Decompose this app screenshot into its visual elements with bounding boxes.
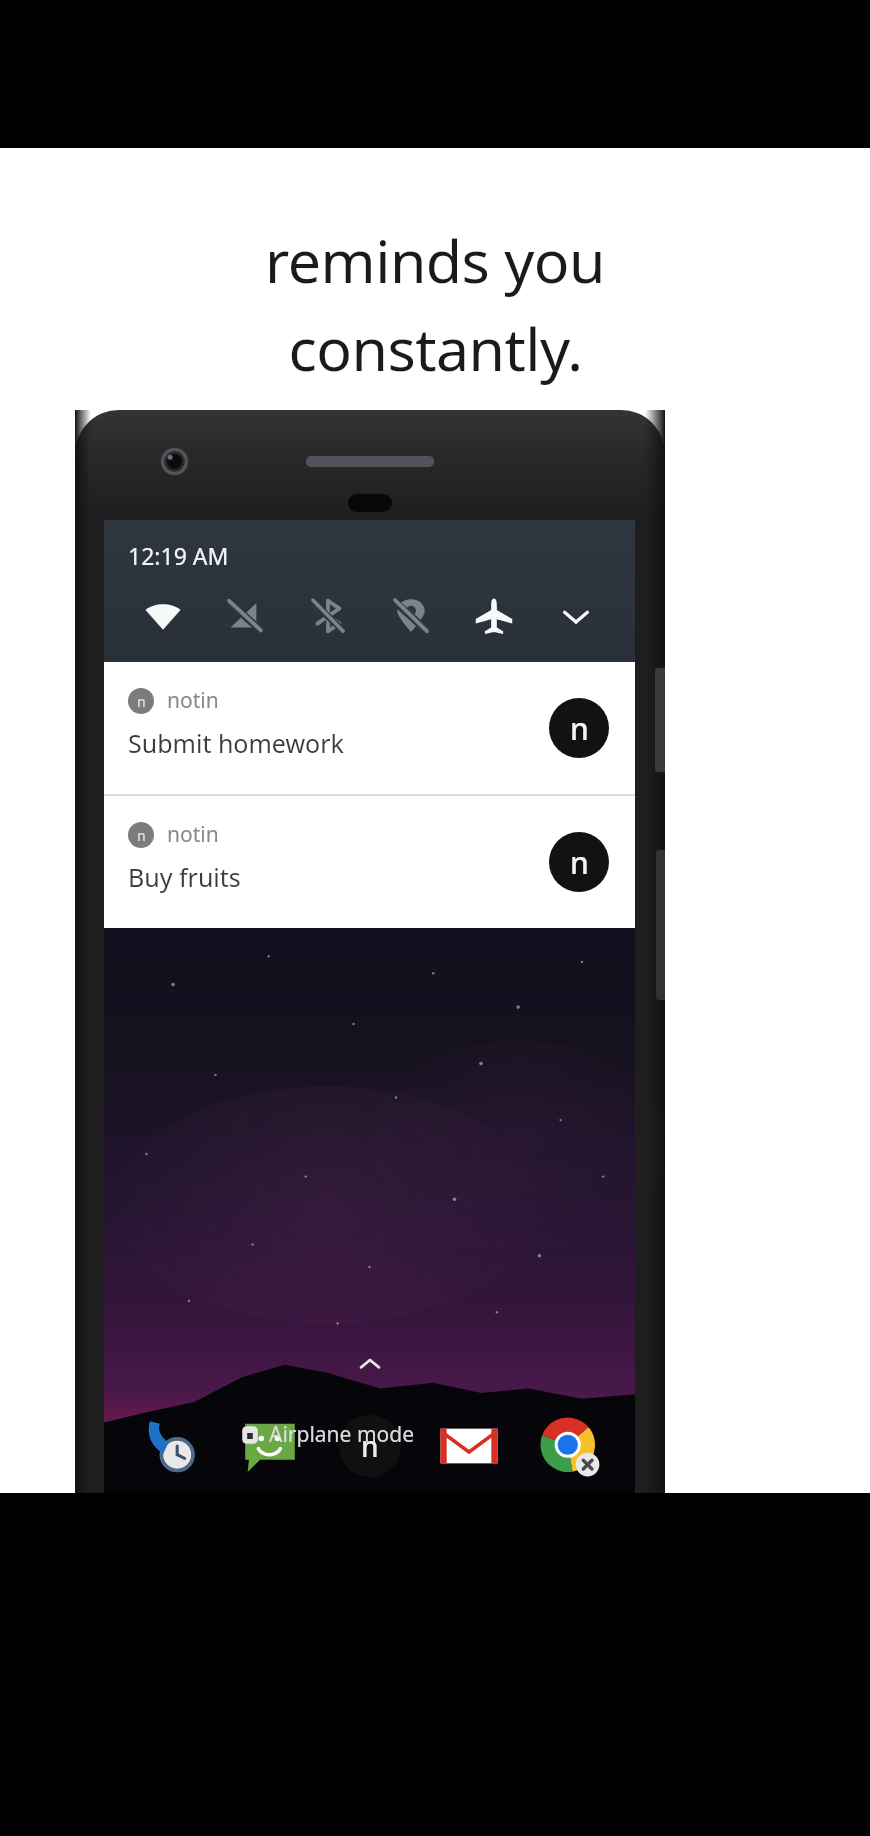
staticText: n xyxy=(361,1427,379,1465)
staticText: reminds you xyxy=(265,220,605,300)
button[interactable]: notin xyxy=(549,832,609,892)
button[interactable]: Location off xyxy=(381,586,441,646)
staticText: constantly. xyxy=(288,308,583,388)
staticText: notin xyxy=(167,820,219,849)
button[interactable]: Mobile data off xyxy=(215,586,275,646)
button[interactable]: Messages xyxy=(229,1405,311,1487)
button[interactable]: Wi-Fi xyxy=(133,586,193,646)
staticText: 12:19 AM xyxy=(128,540,229,571)
staticText: n xyxy=(137,692,146,711)
button[interactable]: n xyxy=(104,796,635,928)
button[interactable]: Gmail xyxy=(428,1405,510,1487)
button[interactable]: Expand quick settings xyxy=(546,586,606,646)
button[interactable]: Phone xyxy=(130,1405,212,1487)
staticText: notin xyxy=(167,686,219,715)
button[interactable]: notin xyxy=(549,698,609,758)
staticText: n xyxy=(570,842,589,883)
button[interactable]: Chrome xyxy=(528,1405,610,1487)
staticText: n xyxy=(137,826,146,845)
button[interactable]: Open app drawer xyxy=(349,1343,391,1385)
staticText: Buy fruits xyxy=(128,860,241,894)
staticText: n xyxy=(570,708,589,749)
button[interactable]: Airplane mode xyxy=(464,586,524,646)
staticText: Airplane mode xyxy=(269,1420,415,1449)
button[interactable]: n xyxy=(104,662,635,794)
staticText: Submit homework xyxy=(128,726,344,760)
button[interactable]: Bluetooth off xyxy=(298,586,358,646)
button[interactable]: notin xyxy=(329,1405,411,1487)
